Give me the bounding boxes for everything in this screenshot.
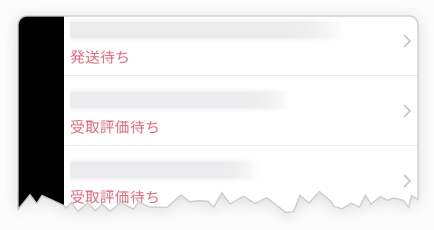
button[interactable]: 受取評価待ち [64,145,418,215]
staticText: 受取評価待ち [70,115,160,137]
button[interactable]: 受取評価待ち [64,75,418,145]
button[interactable]: 発送待ち [64,5,418,75]
staticText: 受取評価待ち [70,185,160,207]
staticText: 発送待ち [70,45,130,67]
